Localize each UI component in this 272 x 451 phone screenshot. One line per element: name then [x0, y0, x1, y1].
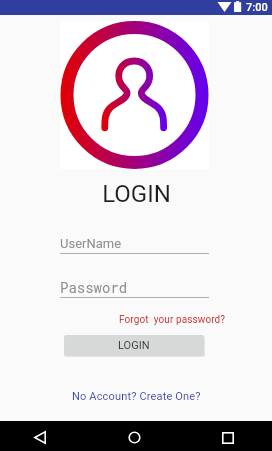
button[interactable]: LOGIN	[64, 335, 204, 356]
button[interactable]: Back	[18, 421, 62, 451]
staticText: LOGIN	[102, 180, 171, 208]
staticText: LOGIN	[118, 339, 150, 352]
button[interactable]: Recent apps	[206, 421, 250, 451]
staticText: Password	[60, 278, 128, 296]
staticText: 7:00	[246, 1, 268, 14]
staticText: No Account? Create One?	[72, 390, 201, 403]
button[interactable]: Home	[113, 421, 157, 451]
button[interactable]: No Account? Create One?	[72, 390, 201, 403]
staticText: UserName	[60, 236, 122, 251]
staticText: Forgot your password?	[119, 314, 226, 326]
button[interactable]: Forgot your password?	[119, 314, 226, 326]
